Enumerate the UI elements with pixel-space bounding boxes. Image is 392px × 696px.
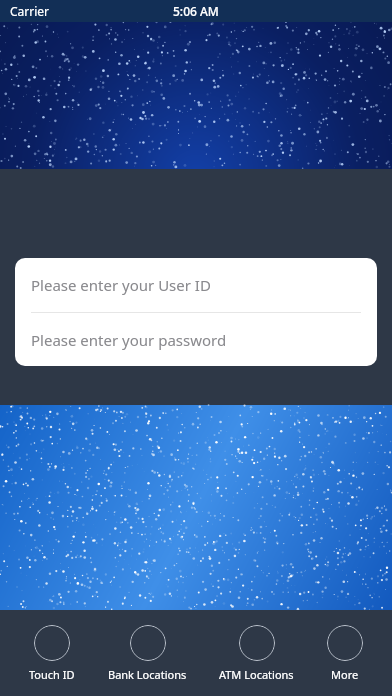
- button[interactable]: Touch ID: [25, 621, 79, 686]
- button[interactable]: More: [323, 621, 367, 686]
- button[interactable]: Please enter your password: [15, 313, 377, 366]
- staticText: Please enter your password: [31, 330, 227, 350]
- staticText: ATM Locations: [219, 667, 294, 682]
- button[interactable]: Please enter your User ID: [15, 258, 377, 312]
- staticText: Bank Locations: [108, 667, 187, 682]
- staticText: Please enter your User ID: [31, 275, 211, 295]
- button[interactable]: Bank Locations: [104, 621, 191, 686]
- staticText: More: [331, 667, 359, 682]
- staticText: 5:06 AM: [173, 3, 219, 19]
- staticText: Carrier: [10, 3, 50, 19]
- button[interactable]: ATM Locations: [215, 621, 298, 686]
- staticText: Touch ID: [29, 667, 75, 682]
